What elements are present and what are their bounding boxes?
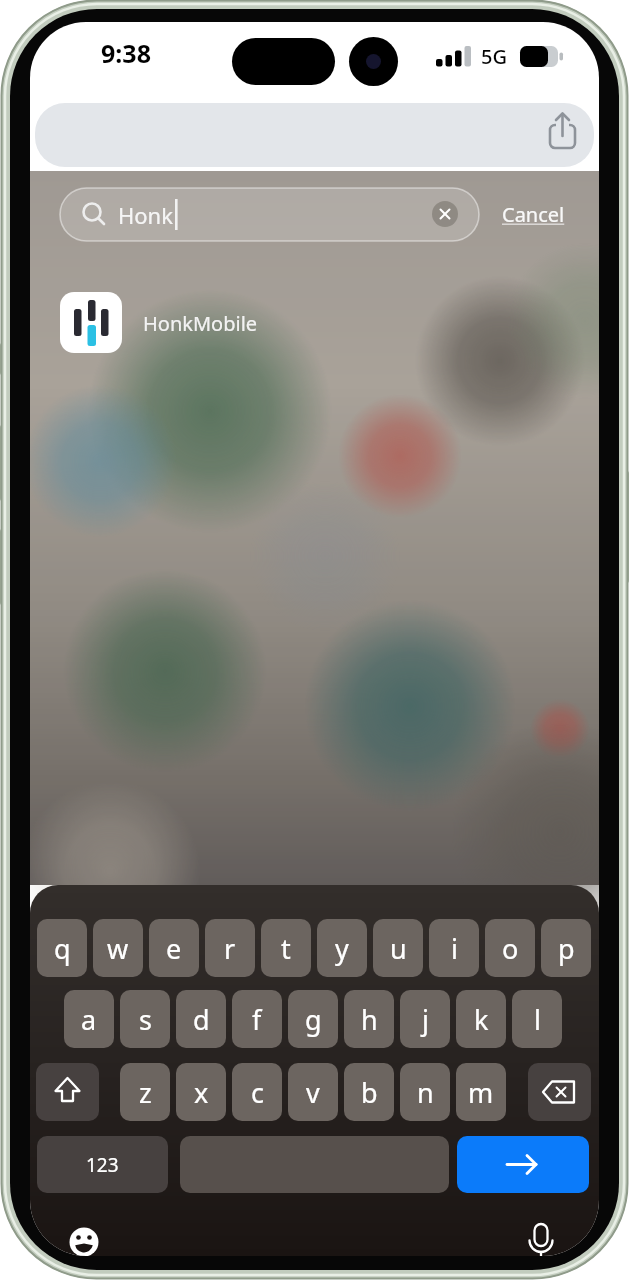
staticText: n (417, 1074, 434, 1111)
staticText: 123 (86, 1152, 119, 1178)
staticText: u (390, 930, 407, 967)
staticText: s (139, 1001, 152, 1038)
button[interactable]: d (176, 990, 226, 1048)
staticText: o (502, 930, 519, 967)
staticText: v (306, 1074, 320, 1111)
button[interactable]: t (261, 919, 311, 977)
staticText: i (451, 930, 458, 967)
staticText: h (361, 1001, 378, 1038)
staticText: 9:38 (101, 36, 151, 70)
staticText: x (194, 1074, 209, 1111)
button[interactable]: q (37, 919, 87, 977)
staticText: w (107, 930, 129, 967)
staticText: k (474, 1001, 489, 1038)
button[interactable]: r (205, 919, 255, 977)
button[interactable]: v (288, 1063, 338, 1121)
button[interactable]: n (400, 1063, 450, 1121)
staticText: b (361, 1074, 378, 1111)
staticText: l (534, 1001, 541, 1038)
staticText: HonkMobile (143, 310, 258, 337)
staticText: m (468, 1074, 494, 1111)
button[interactable]: f (232, 990, 282, 1048)
staticText: q (54, 930, 71, 967)
button[interactable]: s (120, 990, 170, 1048)
button[interactable]: y (317, 919, 367, 977)
staticText: p (558, 930, 575, 967)
staticText: Cancel (502, 201, 565, 228)
button[interactable]: w (93, 919, 143, 977)
staticText: Honk (118, 200, 173, 230)
staticText: y (335, 930, 349, 967)
button[interactable]: j (400, 990, 450, 1048)
staticText: r (224, 930, 236, 967)
button[interactable]: 123 (37, 1136, 168, 1193)
button[interactable]: o (485, 919, 535, 977)
staticText: g (305, 1001, 322, 1038)
button[interactable]: z (120, 1063, 170, 1121)
button[interactable]: l (512, 990, 562, 1048)
button[interactable]: e (149, 919, 199, 977)
button[interactable]: g (288, 990, 338, 1048)
button[interactable] (180, 1136, 449, 1193)
button[interactable]: p (541, 919, 591, 977)
button[interactable] (50, 284, 570, 362)
staticText: c (251, 1074, 264, 1111)
button[interactable] (457, 1136, 589, 1193)
button[interactable]: a (64, 990, 114, 1048)
staticText: d (193, 1001, 210, 1038)
staticText: z (139, 1074, 152, 1111)
staticText: a (81, 1001, 97, 1038)
button[interactable]: h (344, 990, 394, 1048)
staticText: f (252, 1001, 262, 1038)
button[interactable]: Cancel (498, 198, 568, 231)
button[interactable]: u (373, 919, 423, 977)
staticText: j (422, 1001, 429, 1038)
staticText: t (281, 930, 291, 967)
button[interactable]: k (456, 990, 506, 1048)
button[interactable] (35, 103, 594, 167)
button[interactable]: c (232, 1063, 282, 1121)
button[interactable] (528, 1063, 591, 1121)
button[interactable] (60, 188, 479, 241)
button[interactable]: x (176, 1063, 226, 1121)
button[interactable]: b (344, 1063, 394, 1121)
button[interactable] (36, 1063, 99, 1121)
button[interactable]: m (456, 1063, 506, 1121)
staticText: 5G (481, 43, 507, 68)
button[interactable]: i (429, 919, 479, 977)
staticText: e (166, 930, 182, 967)
